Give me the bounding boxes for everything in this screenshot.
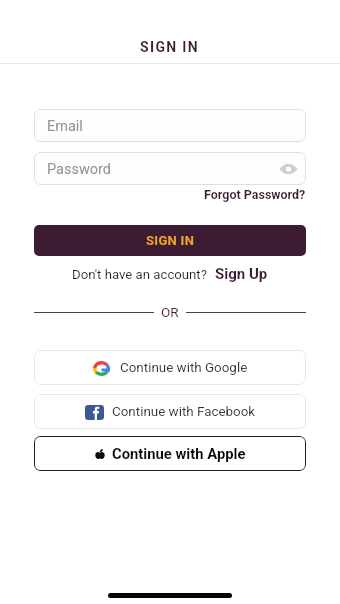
- staticText: SIGN IN: [140, 39, 200, 55]
- button[interactable]: Continue with Facebook: [34, 394, 306, 429]
- staticText: Continue with Apple: [112, 445, 246, 462]
- button[interactable]: Continue with Google: [34, 350, 306, 385]
- button[interactable]: Continue with Apple: [34, 436, 306, 471]
- button[interactable]: Password: [34, 152, 306, 185]
- staticText: Don't have an account?: [72, 267, 207, 282]
- staticText: Continue with Google: [120, 360, 248, 376]
- button[interactable]: Forgot Password?: [204, 187, 306, 202]
- button[interactable]: Email: [34, 109, 306, 142]
- staticText: Sign Up: [215, 265, 268, 283]
- staticText: Password: [47, 161, 112, 178]
- staticText: OR: [161, 304, 179, 320]
- button[interactable]: Show password: [276, 157, 300, 181]
- staticText: Forgot Password?: [204, 187, 306, 202]
- staticText: Continue with Facebook: [112, 404, 256, 420]
- staticText: SIGN IN: [146, 233, 195, 248]
- staticText: Email: [47, 118, 83, 135]
- button[interactable]: SIGN IN: [34, 225, 306, 256]
- button[interactable]: Sign Up: [215, 265, 268, 283]
